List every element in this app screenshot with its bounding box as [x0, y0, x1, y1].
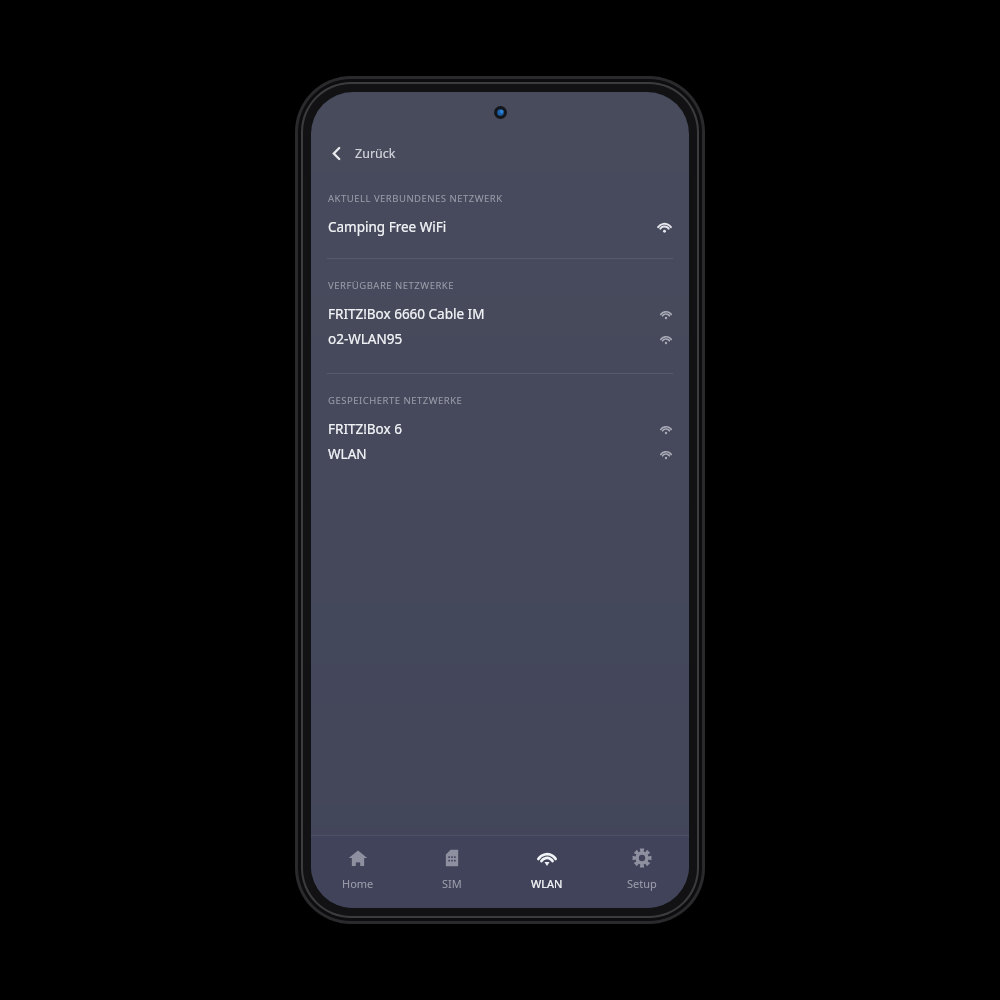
button[interactable]: FRITZ!Box 6660 Cable IM — [311, 301, 689, 326]
staticText: WLAN — [531, 876, 563, 891]
staticText: FRITZ!Box 6660 Cable IM — [328, 305, 485, 323]
staticText: AKTUELL VERBUNDENES NETZWERK — [328, 192, 503, 205]
button[interactable]: FRITZ!Box 6 — [311, 416, 689, 441]
button[interactable]: SIM — [405, 836, 499, 908]
button[interactable]: Zurück — [311, 132, 689, 174]
staticText: WLAN — [328, 445, 367, 463]
button[interactable]: o2-WLAN95 — [311, 326, 689, 351]
staticText: Zurück — [355, 145, 396, 162]
staticText: Home — [342, 876, 374, 891]
staticText: GESPEICHERTE NETZWERKE — [328, 394, 463, 407]
button[interactable]: Home — [311, 836, 405, 908]
button[interactable]: WLAN — [499, 836, 594, 908]
button[interactable]: WLAN — [311, 441, 689, 466]
staticText: VERFÜGBARE NETZWERKE — [328, 279, 454, 292]
button[interactable]: Camping Free WiFi — [311, 214, 689, 239]
staticText: Camping Free WiFi — [328, 218, 447, 236]
staticText: FRITZ!Box 6 — [328, 420, 402, 438]
staticText: o2-WLAN95 — [328, 330, 403, 348]
staticText: Setup — [627, 876, 657, 891]
button[interactable]: Setup — [594, 836, 689, 908]
staticText: SIM — [442, 876, 462, 891]
